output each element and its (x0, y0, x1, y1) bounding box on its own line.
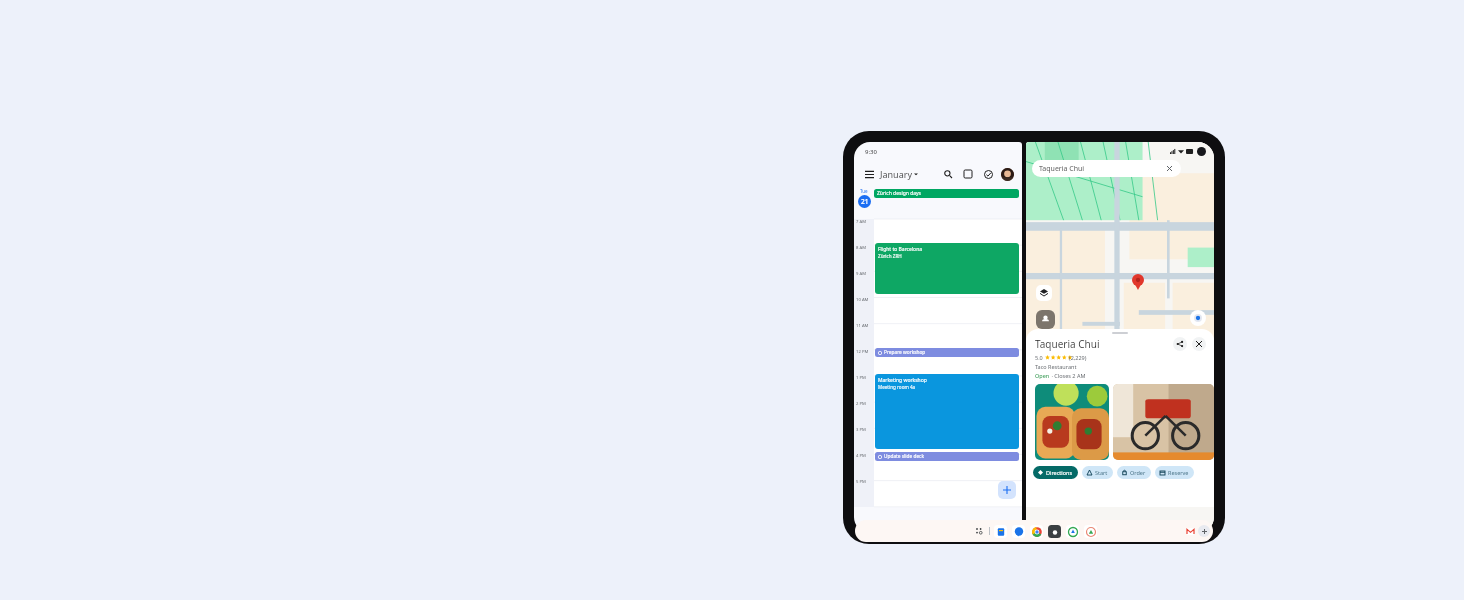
staticText: 7 AM (856, 219, 866, 225)
button[interactable]: Flight to Barcelona (875, 243, 1019, 294)
staticText: Meeting room 4a (878, 384, 916, 390)
button[interactable]: Account (1001, 168, 1014, 181)
staticText: Reserve (1168, 469, 1189, 476)
staticText: Tue (860, 188, 868, 194)
staticText: Zürich design days (877, 190, 921, 197)
button[interactable]: Tasks (981, 167, 995, 181)
staticText: 11 AM (856, 323, 869, 329)
button[interactable]: Map layers (1036, 285, 1052, 301)
button[interactable]: Taqueria Chui (1032, 160, 1181, 177)
staticText: (2,229) (1069, 354, 1087, 361)
staticText: Start (1095, 469, 1108, 476)
button[interactable]: Menu (862, 167, 876, 181)
button[interactable]: Gmail (1184, 525, 1196, 537)
staticText: Taqueria Chui (1039, 164, 1085, 174)
staticText: 3 PM (856, 427, 866, 433)
staticText: Taco Restaurant (1035, 363, 1077, 370)
staticText: Update slide deck (884, 453, 924, 460)
button[interactable]: Street view (1036, 310, 1055, 329)
button[interactable]: Zürich design days (874, 189, 1019, 198)
staticText: 9 AM (856, 271, 866, 277)
button[interactable]: Start (1082, 466, 1113, 479)
staticText: Taqueria Chui (1035, 337, 1100, 351)
button[interactable]: Order (1117, 466, 1151, 479)
staticText: January (880, 168, 912, 180)
staticText: 4 PM (856, 453, 866, 459)
staticText: Marketing workshop (878, 377, 927, 384)
staticText: Directions (1046, 469, 1073, 476)
button[interactable]: Directions (1033, 466, 1078, 479)
button[interactable]: Update slide deck (875, 452, 1019, 461)
staticText: 8 AM (856, 245, 866, 251)
button[interactable]: Clear search (1165, 164, 1174, 173)
staticText: · Closes 2 AM (1050, 372, 1086, 379)
button[interactable]: App (994, 525, 1007, 538)
staticText: 12 PM (856, 349, 869, 355)
button[interactable]: Reserve (1155, 466, 1194, 479)
button[interactable]: Marketing workshop (875, 374, 1019, 449)
staticText: 10 AM (856, 297, 869, 303)
button[interactable]: App (1084, 525, 1097, 538)
staticText: Prepare workshop (884, 349, 926, 356)
button[interactable]: January (880, 168, 918, 180)
button[interactable]: Prepare workshop (875, 348, 1019, 357)
staticText: Zürich ZRH (878, 253, 902, 259)
button[interactable]: Go to date (961, 167, 975, 181)
staticText: 21 (861, 197, 869, 206)
button[interactable]: App (1048, 525, 1061, 538)
button[interactable]: Create event (998, 481, 1016, 499)
staticText: Flight to Barcelona (878, 246, 923, 253)
button[interactable]: App (1030, 525, 1043, 538)
button[interactable]: App (1012, 525, 1025, 538)
staticText: 5.0 (1035, 354, 1043, 361)
button[interactable]: My location (1190, 310, 1206, 326)
button[interactable]: All apps (972, 524, 986, 538)
button[interactable]: Tacos photo (1035, 384, 1109, 460)
button[interactable]: Share (1173, 337, 1187, 351)
staticText: Order (1130, 469, 1146, 476)
button[interactable]: Bicycle photo (1113, 384, 1214, 460)
button[interactable]: Search (941, 167, 955, 181)
staticText: 1 PM (856, 375, 866, 381)
staticText: 9:30 (865, 148, 877, 156)
button[interactable]: Close (1192, 337, 1206, 351)
staticText: 5 PM (856, 479, 866, 485)
button[interactable]: App (1066, 525, 1079, 538)
button[interactable]: Add app (1198, 525, 1210, 537)
staticText: 2 PM (856, 401, 866, 407)
staticText: Open (1035, 372, 1050, 379)
